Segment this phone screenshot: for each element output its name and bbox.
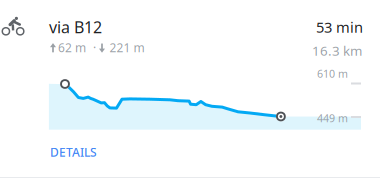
staticText: via B12 — [49, 16, 102, 38]
button[interactable]: DETAILS — [50, 139, 130, 165]
staticText: 62 m — [58, 39, 86, 55]
staticText: 53 min — [316, 17, 363, 37]
staticText: 449 m — [317, 111, 348, 125]
staticText: DETAILS — [50, 144, 97, 160]
staticText: 221 m — [110, 39, 145, 55]
staticText: · — [93, 39, 96, 55]
staticText: 16.3 km — [312, 42, 362, 59]
staticText: 610 m — [317, 66, 348, 81]
